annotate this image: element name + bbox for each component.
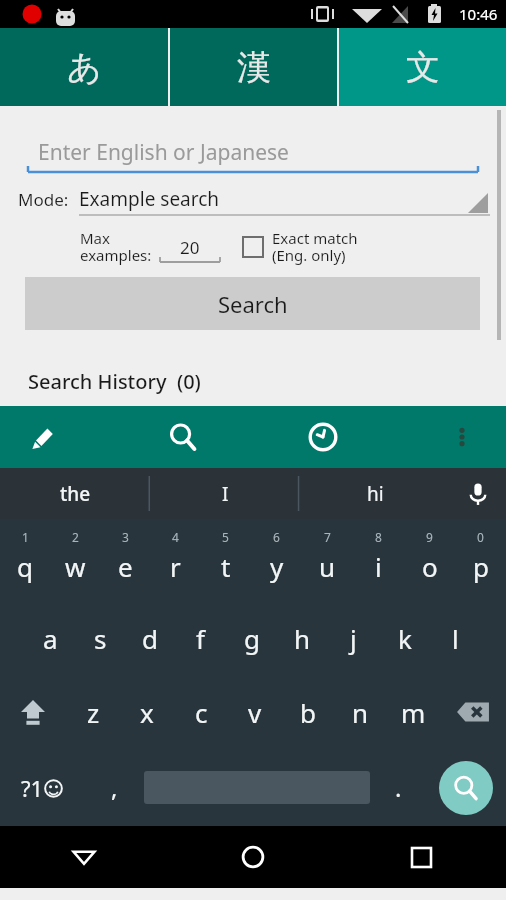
staticText: 10:46 (459, 4, 498, 24)
staticText: 文 (406, 46, 440, 89)
staticText: e (118, 549, 133, 584)
button[interactable]: Exact match (Eng. only) (242, 228, 358, 266)
button[interactable]: 1 (0, 519, 50, 601)
staticText: y (270, 549, 284, 584)
button[interactable]: a (25, 601, 75, 675)
button[interactable]: More options (438, 413, 486, 461)
staticText: h (294, 621, 311, 656)
button[interactable]: 7 (302, 519, 353, 601)
button[interactable]: 漢 (170, 28, 337, 106)
staticText: 5 (222, 529, 229, 545)
button[interactable]: . (370, 749, 426, 826)
button[interactable]: h (277, 601, 328, 675)
staticText: Max examples: (80, 228, 152, 266)
button[interactable]: hi (300, 468, 450, 519)
button[interactable]: History (295, 409, 351, 465)
staticText: o (422, 549, 438, 584)
staticText: Enter English or Japanese (38, 138, 289, 167)
button[interactable]: m (387, 675, 440, 749)
staticText: l (452, 621, 459, 656)
staticText: t (221, 549, 231, 584)
staticText: g (244, 621, 260, 656)
staticText: 20 (180, 236, 200, 259)
button[interactable]: I (150, 468, 300, 519)
button[interactable]: g (226, 601, 277, 675)
button[interactable]: あ (0, 28, 168, 106)
staticText: j (350, 621, 357, 656)
staticText: n (352, 695, 369, 730)
staticText: 1 (22, 529, 29, 545)
staticText: a (43, 621, 58, 656)
button[interactable]: Home (168, 826, 337, 888)
button[interactable]: 2 (50, 519, 100, 601)
staticText: 0 (477, 529, 484, 545)
button[interactable]: z (66, 675, 120, 749)
staticText: 4 (172, 529, 179, 545)
staticText: Exact match (Eng. only) (272, 228, 358, 266)
staticText: v (248, 695, 262, 730)
staticText: c (195, 695, 208, 730)
staticText: p (473, 549, 489, 584)
button[interactable]: , (84, 749, 144, 826)
button[interactable]: Shift (0, 675, 66, 749)
button[interactable]: 5 (200, 519, 251, 601)
button[interactable]: j (328, 601, 379, 675)
staticText: f (196, 621, 205, 656)
staticText: the (60, 481, 91, 507)
button[interactable]: Edit (14, 409, 70, 465)
button[interactable]: 3 (100, 519, 150, 601)
button[interactable]: ?1 (0, 749, 84, 826)
staticText: k (398, 621, 412, 656)
staticText: Example search (79, 186, 220, 212)
staticText: Search (218, 289, 288, 319)
staticText: Mode: (18, 188, 69, 211)
button[interactable]: Backspace (440, 675, 506, 749)
button[interactable]: s (75, 601, 125, 675)
button[interactable]: k (379, 601, 430, 675)
button[interactable]: n (334, 675, 387, 749)
button[interactable]: b (281, 675, 334, 749)
staticText: s (94, 621, 107, 656)
staticText: I (222, 481, 229, 507)
button[interactable]: Example search (79, 181, 490, 217)
button[interactable]: 4 (150, 519, 200, 601)
staticText: 2 (72, 529, 79, 545)
staticText: b (300, 695, 316, 730)
button[interactable]: x (120, 675, 174, 749)
button[interactable]: Back (0, 826, 168, 888)
button[interactable]: Enter English or Japanese (28, 131, 478, 173)
button[interactable]: 9 (404, 519, 455, 601)
button[interactable]: f (175, 601, 226, 675)
staticText: m (401, 695, 426, 730)
button[interactable]: Search (155, 409, 211, 465)
staticText: i (375, 549, 382, 584)
button[interactable]: 20 (160, 230, 220, 264)
staticText: x (140, 695, 154, 730)
staticText: u (319, 549, 336, 584)
staticText: hi (367, 481, 384, 507)
button[interactable]: Search (439, 761, 493, 815)
staticText: z (87, 695, 100, 730)
button[interactable]: 0 (455, 519, 506, 601)
button[interactable]: 文 (339, 28, 506, 106)
button[interactable]: v (228, 675, 281, 749)
button[interactable]: Voice input (450, 468, 506, 519)
button[interactable]: the (0, 468, 150, 519)
staticText: , (111, 771, 118, 804)
staticText: 3 (122, 529, 129, 545)
button[interactable]: d (125, 601, 175, 675)
staticText: . (395, 771, 402, 804)
staticText: 6 (273, 529, 280, 545)
button[interactable]: Recent apps (337, 826, 506, 888)
button[interactable]: 6 (251, 519, 302, 601)
staticText: Search History (0) (28, 368, 201, 395)
staticText: ?1 (21, 773, 44, 803)
button[interactable]: l (430, 601, 481, 675)
staticText: 9 (426, 529, 433, 545)
button[interactable]: 8 (353, 519, 404, 601)
button[interactable]: Search (25, 277, 480, 330)
button[interactable]: c (174, 675, 228, 749)
staticText: 漢 (237, 46, 271, 89)
staticText: q (17, 549, 33, 584)
